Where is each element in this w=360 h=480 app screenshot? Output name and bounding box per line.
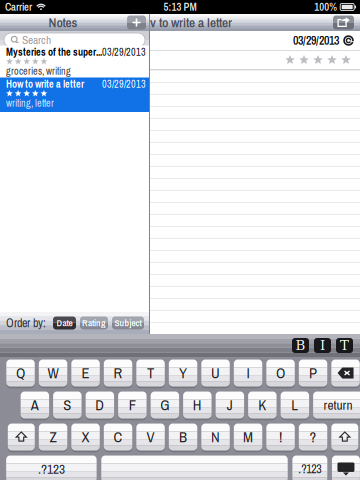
staticText: X	[82, 427, 90, 447]
staticText: B	[179, 427, 187, 447]
button[interactable]: Hide keyboard	[332, 454, 360, 480]
button[interactable]: V	[136, 422, 165, 452]
button[interactable]: .?123	[292, 454, 327, 480]
staticText: Order by:	[6, 315, 46, 331]
staticText: S	[63, 395, 71, 415]
staticText: Search	[22, 32, 51, 48]
button[interactable]: Delete	[331, 358, 360, 388]
staticText: C	[114, 427, 123, 447]
button[interactable]: !	[266, 422, 295, 452]
staticText: E	[82, 363, 90, 383]
staticText: Z	[50, 427, 57, 447]
staticText: N	[211, 427, 220, 447]
staticText: Carrier	[5, 0, 32, 14]
button[interactable]: F	[118, 390, 147, 420]
staticText: !	[279, 427, 282, 447]
staticText: M	[243, 427, 253, 447]
button[interactable]: H	[183, 390, 212, 420]
staticText: return	[324, 396, 353, 414]
staticText: D	[95, 395, 104, 415]
button[interactable]: Share	[332, 14, 355, 31]
staticText: Rating	[82, 317, 106, 329]
button[interactable]: B	[169, 422, 197, 452]
staticText: Subject	[114, 317, 141, 329]
staticText: J	[227, 395, 233, 415]
staticText: B	[295, 338, 305, 353]
button[interactable]: Subject	[112, 316, 144, 329]
button[interactable]: T	[336, 338, 353, 353]
button[interactable]: G	[151, 390, 179, 420]
staticText: I	[247, 363, 250, 383]
staticText: .?123	[298, 461, 321, 477]
staticText: groceries, writing	[6, 64, 71, 78]
button[interactable]: Mysteries of the super...	[0, 49, 149, 80]
staticText: W	[48, 363, 59, 383]
button[interactable]: M	[234, 422, 262, 452]
button[interactable]: I	[314, 338, 331, 353]
staticText: Y	[179, 363, 187, 383]
button[interactable]: A	[21, 390, 49, 420]
staticText: Mysteries of the super...	[6, 45, 102, 59]
button[interactable]: Z	[39, 422, 67, 452]
button[interactable]: Q	[6, 358, 35, 388]
button[interactable]: T	[136, 358, 165, 388]
button[interactable]: K	[248, 390, 277, 420]
button[interactable]: L	[281, 390, 309, 420]
button[interactable]: R	[104, 358, 132, 388]
button[interactable]: X	[71, 422, 100, 452]
staticText: L	[291, 395, 298, 415]
button[interactable]: D	[86, 390, 114, 420]
button[interactable]: Rating	[80, 316, 108, 329]
staticText: writing, letter	[6, 96, 54, 110]
button[interactable]: B	[292, 338, 309, 353]
staticText: How to write a letter	[6, 77, 84, 91]
staticText: P	[309, 363, 317, 383]
button[interactable]: How to write a letter	[0, 81, 149, 112]
button[interactable]: Shift	[331, 422, 358, 452]
button[interactable]: Y	[169, 358, 197, 388]
staticText: K	[258, 395, 266, 415]
button[interactable]: E	[71, 358, 100, 388]
button[interactable]: Shift	[8, 422, 35, 452]
staticText: 03/29/2013	[293, 32, 339, 49]
button[interactable]: .?123	[6, 454, 97, 480]
staticText: 03/29/2013	[102, 45, 146, 59]
staticText: G	[160, 395, 169, 415]
button[interactable]: O	[266, 358, 295, 388]
staticText: ?	[310, 427, 317, 447]
button[interactable]: C	[104, 422, 132, 452]
staticText: V	[147, 427, 155, 447]
staticText: F	[129, 395, 136, 415]
button[interactable]	[101, 454, 288, 480]
button[interactable]: N	[201, 422, 230, 452]
staticText: R	[114, 363, 123, 383]
staticText: Q	[16, 363, 25, 383]
staticText: .?123	[38, 460, 65, 478]
staticText: 03/29/2013	[102, 77, 146, 91]
staticText: Notes	[48, 13, 77, 31]
button[interactable]: Date	[53, 316, 76, 329]
button[interactable]: P	[299, 358, 327, 388]
staticText: v to write a letter	[150, 13, 232, 31]
staticText: H	[193, 395, 202, 415]
staticText: 5:13 PM	[163, 0, 196, 14]
button[interactable]: ?	[299, 422, 327, 452]
staticText: T	[340, 338, 349, 353]
button[interactable]: J	[216, 390, 244, 420]
button[interactable]: New note	[126, 14, 147, 31]
staticText: A	[31, 395, 39, 415]
button[interactable]: S	[53, 390, 82, 420]
button[interactable]: U	[201, 358, 230, 388]
button[interactable]: W	[39, 358, 67, 388]
staticText: I	[320, 338, 325, 353]
button[interactable]: return	[313, 390, 360, 420]
staticText: T	[147, 363, 154, 383]
staticText: 100%	[314, 0, 337, 14]
staticText: O	[276, 363, 285, 383]
staticText: Date	[56, 317, 72, 329]
button[interactable]: I	[234, 358, 262, 388]
staticText: U	[211, 363, 220, 383]
